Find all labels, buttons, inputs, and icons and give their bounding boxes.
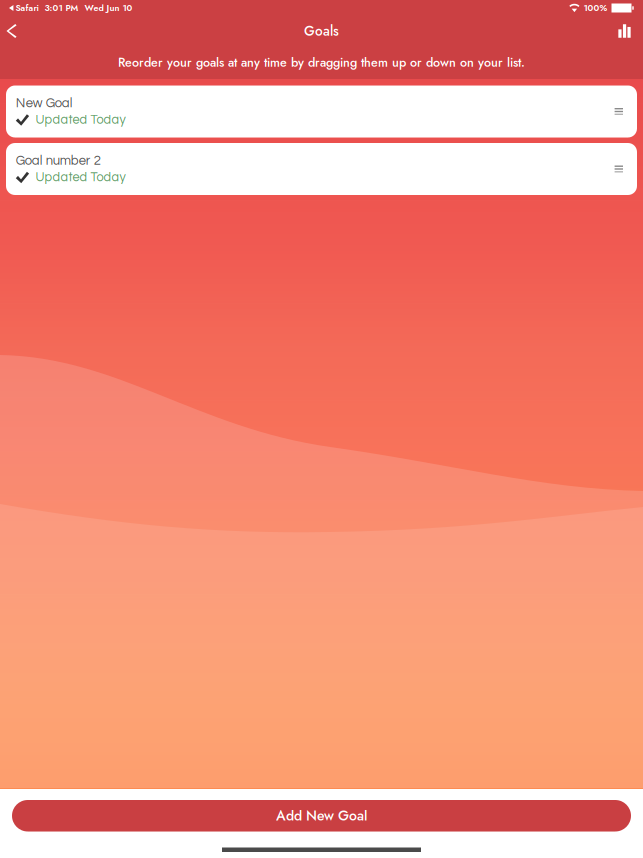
staticText: New Goal <box>16 96 73 110</box>
button[interactable]: Add New Goal <box>12 800 631 831</box>
staticText: Goal number 2 <box>16 154 101 167</box>
staticText: Add New Goal <box>276 806 367 826</box>
staticText: Goals <box>304 21 339 41</box>
button[interactable]: New Goal <box>6 85 637 137</box>
staticText: Reorder your goals at any time by draggi… <box>118 53 525 71</box>
staticText: Updated Today <box>36 171 126 184</box>
staticText: Wed Jun 10 <box>84 1 132 14</box>
button[interactable]: Statistics <box>612 16 636 46</box>
button[interactable]: Back <box>6 16 30 46</box>
staticText: 3:01 PM <box>44 1 78 14</box>
staticText: Safari <box>15 1 38 14</box>
staticText: Updated Today <box>36 113 126 126</box>
button[interactable]: Goal number 2 <box>6 143 637 195</box>
staticText: 100% <box>583 1 607 14</box>
